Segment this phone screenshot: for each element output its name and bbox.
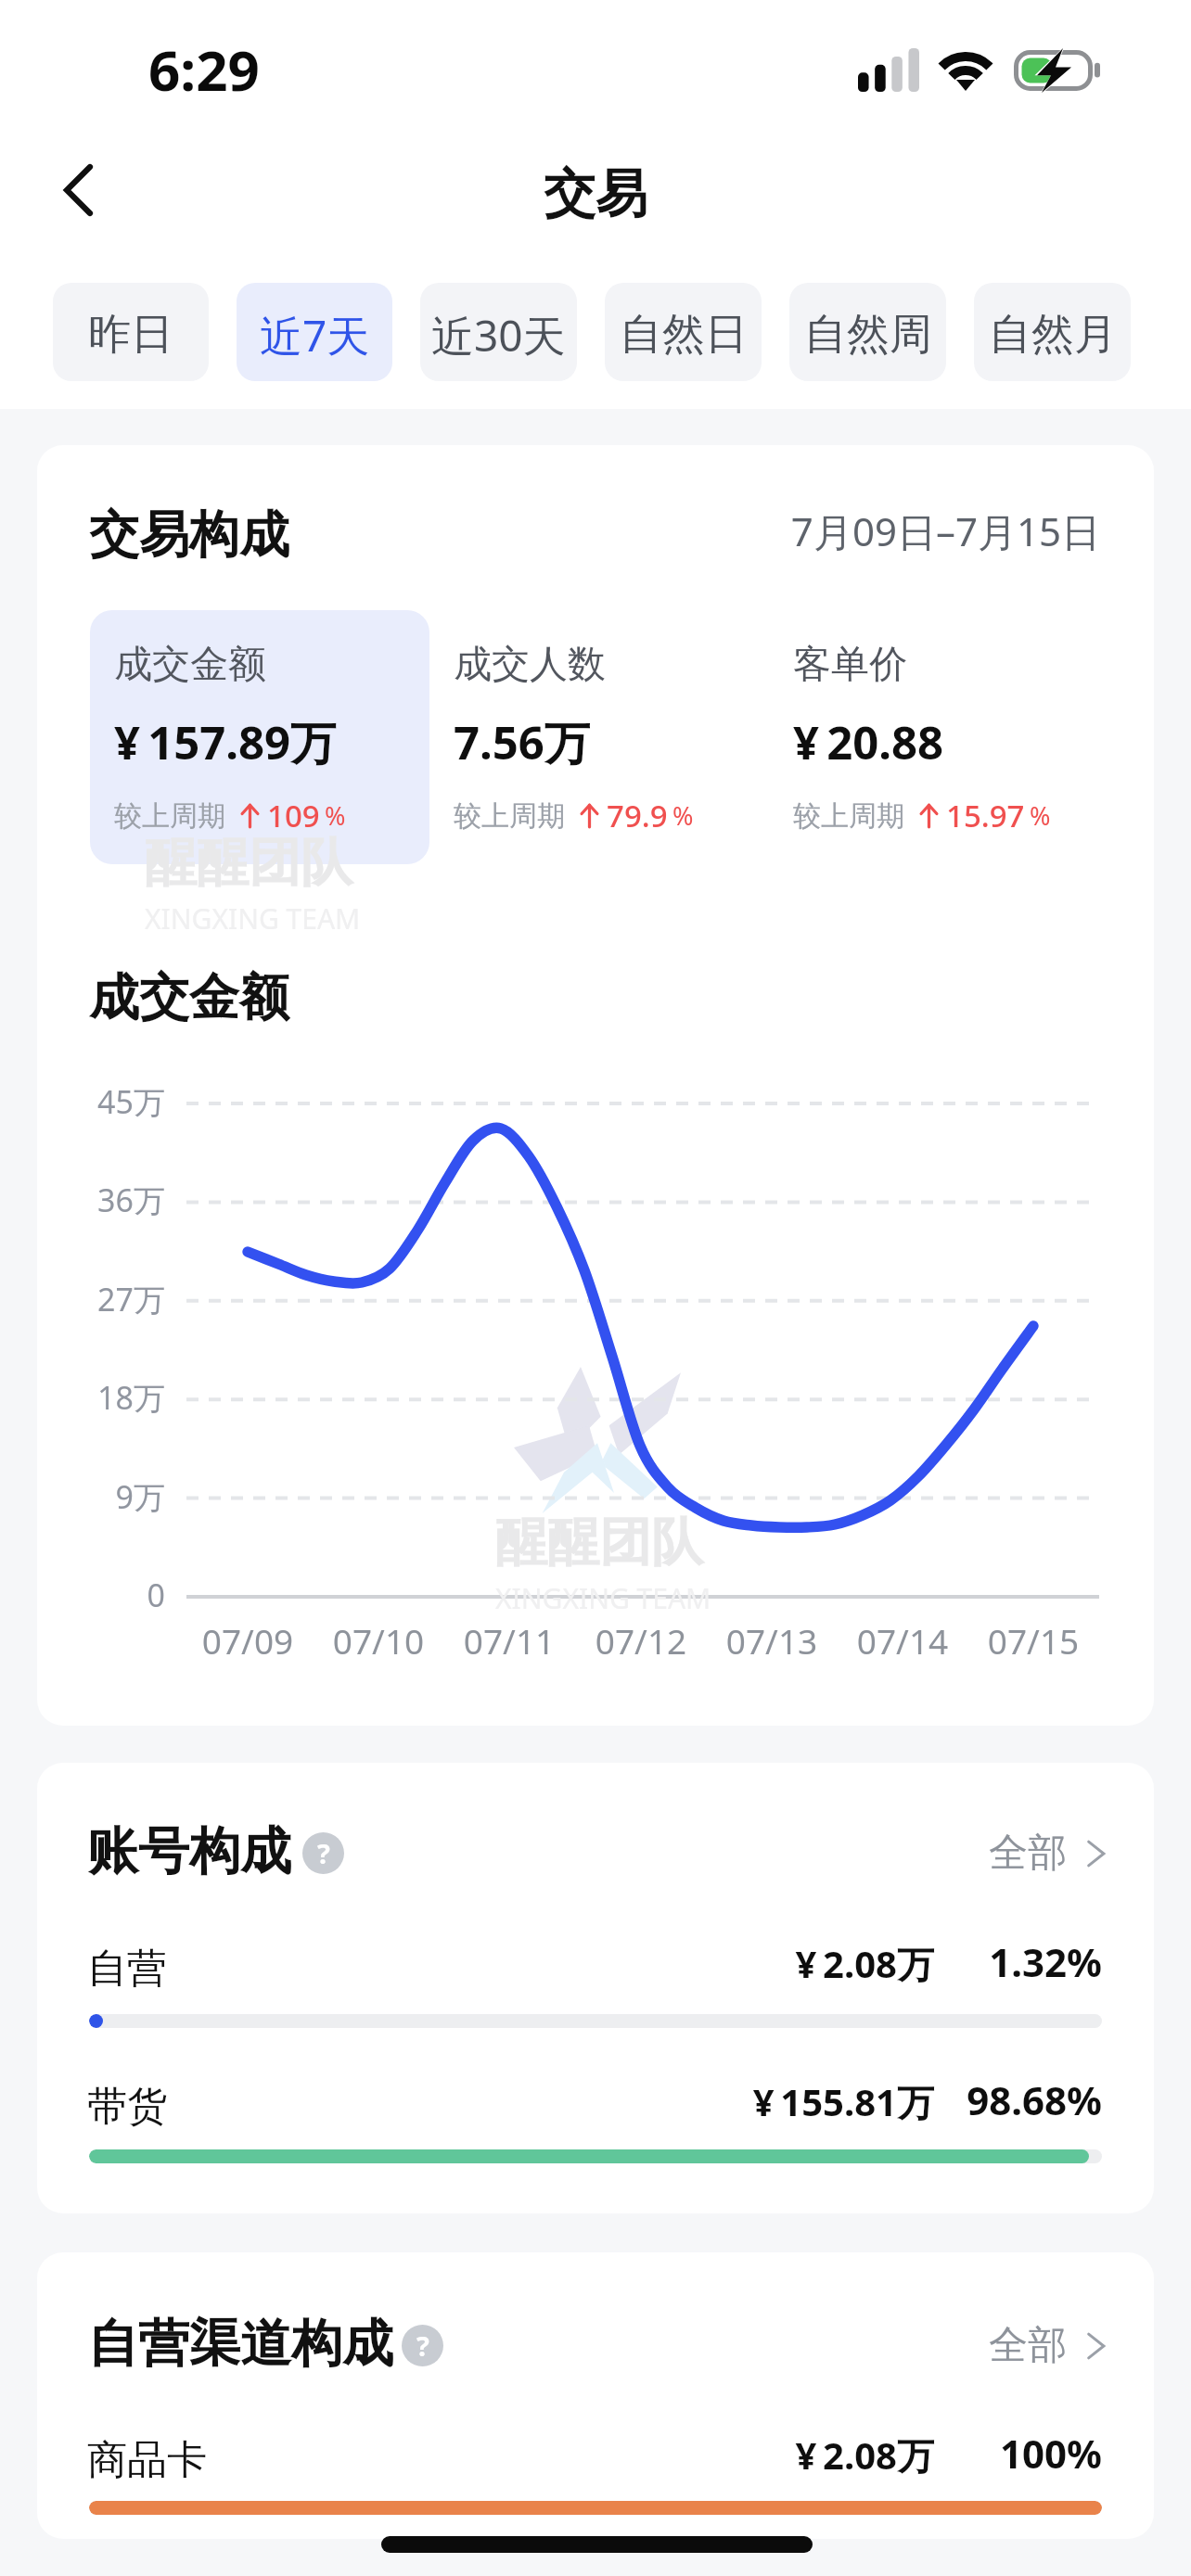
staticText: 109 bbox=[267, 795, 320, 836]
staticText: 0 bbox=[63, 1574, 165, 1616]
staticText: 自营渠道构成 bbox=[87, 2312, 393, 2376]
staticText: ¥ 155.81万 bbox=[686, 2076, 934, 2127]
button[interactable]: 全部 bbox=[989, 2321, 1107, 2370]
staticText: 交易 bbox=[0, 161, 1191, 227]
staticText: ¥ 2.08万 bbox=[686, 1938, 934, 1989]
staticText: 账号构成 bbox=[87, 1819, 291, 1883]
staticText: 全部 bbox=[989, 1829, 1067, 1878]
staticText: 成交人数 bbox=[454, 641, 606, 689]
staticText: 7.56万 bbox=[454, 711, 590, 773]
button[interactable]: 昨日 bbox=[53, 283, 209, 381]
button[interactable]: 全部 bbox=[989, 1829, 1107, 1878]
staticText: 较上周期 bbox=[793, 798, 904, 834]
staticText: 07/15 bbox=[968, 1617, 1098, 1664]
staticText: 自然月 bbox=[989, 308, 1117, 362]
staticText: 商品卡 bbox=[87, 2435, 207, 2485]
staticText: 45万 bbox=[63, 1080, 165, 1123]
button[interactable]: Help bbox=[402, 2325, 443, 2366]
staticText: 交易构成 bbox=[89, 504, 289, 567]
staticText: 成交金额 bbox=[114, 641, 266, 689]
staticText: 36万 bbox=[63, 1179, 165, 1221]
staticText: % bbox=[672, 798, 694, 833]
staticText: 7月09日–7月15日 bbox=[37, 504, 1100, 557]
button[interactable]: 客单价 bbox=[769, 610, 1108, 864]
staticText: 79.9 bbox=[607, 795, 668, 836]
staticText: 较上周期 bbox=[114, 798, 225, 834]
staticText: 近7天 bbox=[260, 306, 370, 364]
staticText: 07/14 bbox=[838, 1617, 967, 1664]
staticText: 9万 bbox=[63, 1475, 165, 1518]
staticText: 18万 bbox=[63, 1376, 165, 1419]
staticText: 98.68% bbox=[916, 2073, 1102, 2126]
staticText: 100% bbox=[916, 2427, 1102, 2480]
staticText: 成交金额 bbox=[89, 966, 289, 1029]
staticText: ? bbox=[416, 2327, 429, 2364]
staticText: ¥ 20.88 bbox=[793, 711, 944, 773]
button[interactable]: 自然月 bbox=[974, 283, 1131, 381]
staticText: ¥ 2.08万 bbox=[686, 2429, 934, 2480]
staticText: 15.97 bbox=[946, 795, 1025, 836]
staticText: 07/13 bbox=[707, 1617, 837, 1664]
staticText: 27万 bbox=[63, 1278, 165, 1320]
staticText: 醒醒团队 bbox=[495, 1510, 703, 1575]
staticText: % bbox=[325, 798, 346, 833]
staticText: 全部 bbox=[989, 2321, 1067, 2370]
button[interactable]: 近7天 bbox=[237, 283, 392, 381]
button[interactable]: Back bbox=[30, 142, 122, 235]
staticText: 醒醒团队 bbox=[145, 830, 352, 896]
button[interactable]: 成交金额 bbox=[90, 610, 429, 864]
staticText: 自营 bbox=[87, 1944, 167, 1994]
staticText: 07/11 bbox=[444, 1617, 574, 1664]
staticText: XINGXING TEAM bbox=[145, 899, 361, 937]
button[interactable]: 成交人数 bbox=[429, 610, 769, 864]
staticText: ¥ 157.89万 bbox=[114, 711, 337, 773]
staticText: 07/10 bbox=[314, 1617, 443, 1664]
staticText: 07/09 bbox=[183, 1617, 313, 1664]
staticText: 带货 bbox=[87, 2082, 167, 2132]
staticText: 较上周期 bbox=[454, 798, 565, 834]
staticText: 自然日 bbox=[620, 308, 748, 362]
staticText: ? bbox=[317, 1835, 330, 1871]
button[interactable]: 自然日 bbox=[605, 283, 762, 381]
button[interactable]: Help bbox=[302, 1832, 344, 1874]
button[interactable]: 近30天 bbox=[420, 283, 577, 381]
staticText: 客单价 bbox=[793, 641, 907, 689]
staticText: 昨日 bbox=[88, 308, 173, 362]
staticText: 1.32% bbox=[916, 1935, 1102, 1988]
staticText: 自然周 bbox=[804, 308, 932, 362]
staticText: 07/12 bbox=[576, 1617, 706, 1664]
staticText: % bbox=[1030, 798, 1051, 833]
staticText: 6:29 bbox=[148, 32, 260, 108]
button[interactable]: 自然周 bbox=[789, 283, 946, 381]
staticText: XINGXING TEAM bbox=[495, 1579, 711, 1617]
staticText: 近30天 bbox=[431, 306, 566, 364]
